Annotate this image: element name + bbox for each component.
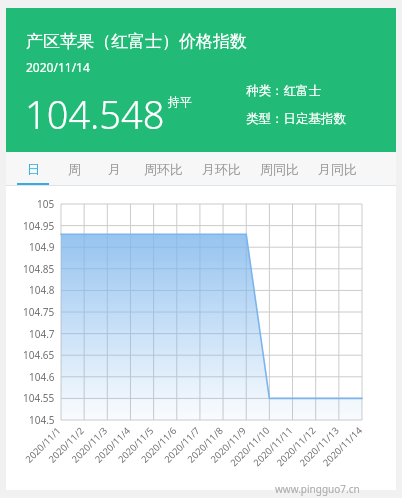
staticText: 周 [68,161,81,177]
staticText: 类型：日定基指数 [246,111,346,127]
staticText: 持平 [168,94,192,109]
staticText: 种类：红富士 [246,83,321,99]
staticText: 周环比 [144,161,183,177]
staticText: 产区苹果（红富士）价格指数 [26,31,247,52]
staticText: 104.548 [25,88,165,140]
button[interactable]: 月同比 [308,152,366,186]
button[interactable]: 周环比 [134,152,192,186]
staticText: 月同比 [318,161,357,177]
staticText: 2020/11/14 [26,59,90,75]
button[interactable]: 周 [54,152,94,186]
staticText: 周同比 [260,161,299,177]
button[interactable]: 月 [94,152,134,186]
button[interactable]: 日 [12,152,54,186]
button[interactable]: 周同比 [250,152,308,186]
staticText: 日 [27,161,40,177]
staticText: 月 [108,161,121,177]
other: 产区苹果价格指数折线图 [6,186,396,490]
staticText: 月环比 [202,161,241,177]
button[interactable]: 月环比 [192,152,250,186]
